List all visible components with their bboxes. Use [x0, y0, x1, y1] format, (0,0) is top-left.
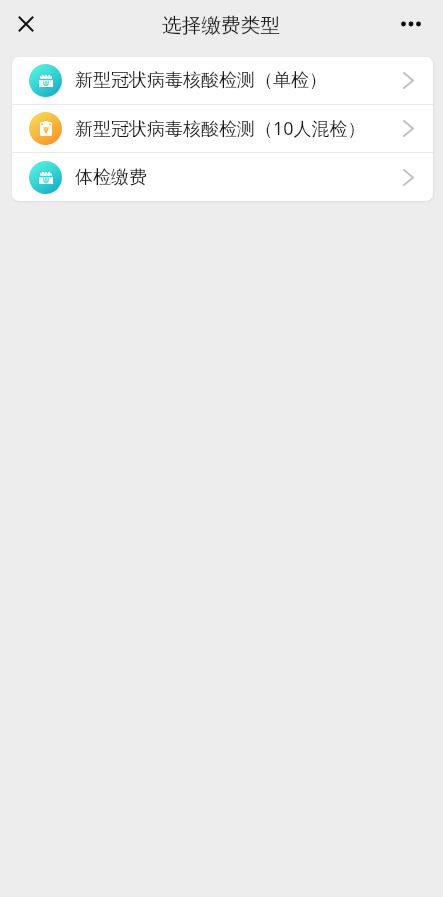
button[interactable]: More options [393, 6, 429, 42]
button[interactable]: Close [8, 6, 44, 42]
staticText: 选择缴费类型 [162, 13, 281, 38]
staticText: 新型冠状病毒核酸检测（单检） [75, 69, 327, 92]
staticText: 体检缴费 [75, 166, 147, 189]
staticText: 新型冠状病毒核酸检测（10人混检） [75, 116, 366, 141]
button[interactable]: 新型冠状病毒核酸检测（单检） [12, 57, 433, 104]
button[interactable]: 新型冠状病毒核酸检测（10人混检） [12, 105, 433, 152]
button[interactable]: 体检缴费 [12, 153, 433, 201]
